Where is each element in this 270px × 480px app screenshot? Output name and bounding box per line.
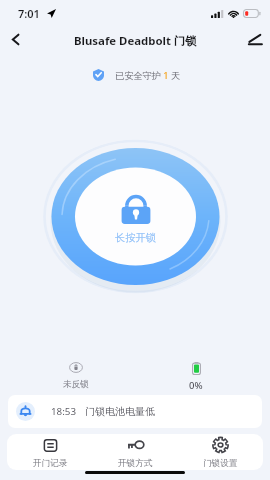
staticText: 未反锁 [63,379,89,390]
button[interactable]: Long press to unlock [115,194,156,244]
staticText: 18:53 [51,405,77,418]
button[interactable]: 开门记录 [7,434,93,470]
button[interactable]: Edit name [240,24,270,54]
staticText: 开锁方式 [118,458,153,469]
button[interactable]: 开锁方式 [93,434,178,470]
staticText: Blusafe Deadbolt 门锁 [74,33,197,49]
staticText: 长按开锁 [115,231,156,244]
staticText: 0% [189,379,203,392]
staticText: 开门记录 [33,458,68,469]
staticText: 已安全守护 1 天 [115,69,181,82]
staticText: 7:01 [18,6,40,21]
button[interactable]: Back [0,24,30,54]
button[interactable]: 0% [136,362,256,392]
button[interactable]: 未反锁 [16,362,136,390]
button[interactable]: 18:53 [8,395,262,428]
staticText: 门锁电池电量低 [85,405,155,418]
button[interactable]: 门锁设置 [178,434,263,470]
staticText: 门锁设置 [203,458,238,469]
